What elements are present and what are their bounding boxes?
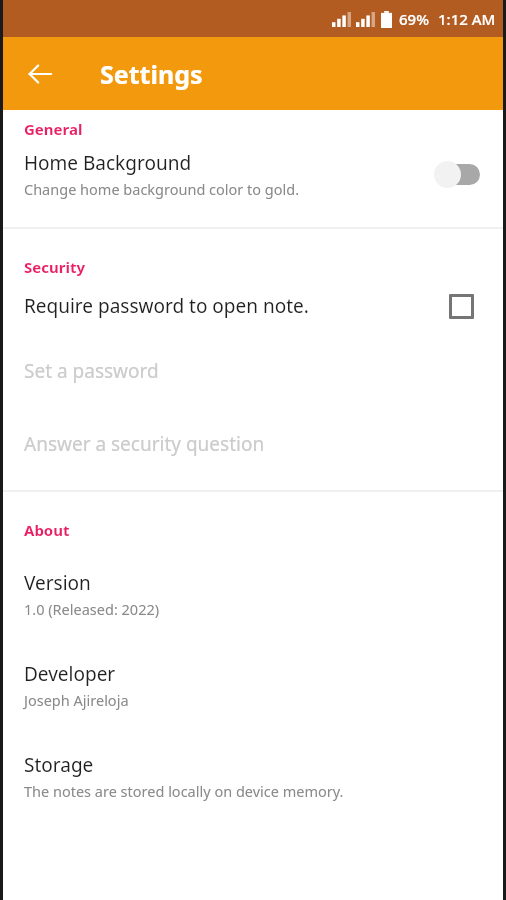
button[interactable]: Home Background <box>0 139 506 209</box>
staticText: About <box>24 520 70 540</box>
staticText: Home Background <box>24 150 192 176</box>
button[interactable]: Require password to open note. <box>0 277 506 335</box>
staticText: Security <box>24 257 85 277</box>
staticText: Developer <box>24 661 116 687</box>
button[interactable]: Version <box>0 540 506 619</box>
staticText: Require password to open note. <box>24 293 444 319</box>
staticText: Version <box>24 570 91 596</box>
button[interactable]: Require password checkbox <box>444 289 478 323</box>
staticText: Joseph Ajireloja <box>24 690 129 710</box>
staticText: Settings <box>100 57 203 91</box>
staticText: Set a password <box>24 358 159 384</box>
button[interactable]: Home Background toggle <box>434 160 480 188</box>
staticText: 1.0 (Released: 2022) <box>24 599 160 619</box>
staticText: 1:12 AM <box>438 9 496 29</box>
staticText: The notes are stored locally on device m… <box>24 781 344 801</box>
button[interactable]: Back <box>17 51 63 97</box>
staticText: Answer a security question <box>24 431 265 457</box>
staticText: 69% <box>399 9 429 29</box>
staticText: Change home background color to gold. <box>24 179 300 199</box>
staticText: General <box>24 119 83 139</box>
button[interactable]: Storage <box>0 710 506 801</box>
staticText: Storage <box>24 752 94 778</box>
button[interactable]: Answer a security question <box>0 407 506 480</box>
button[interactable]: Set a password <box>0 335 506 407</box>
button[interactable]: Developer <box>0 619 506 710</box>
